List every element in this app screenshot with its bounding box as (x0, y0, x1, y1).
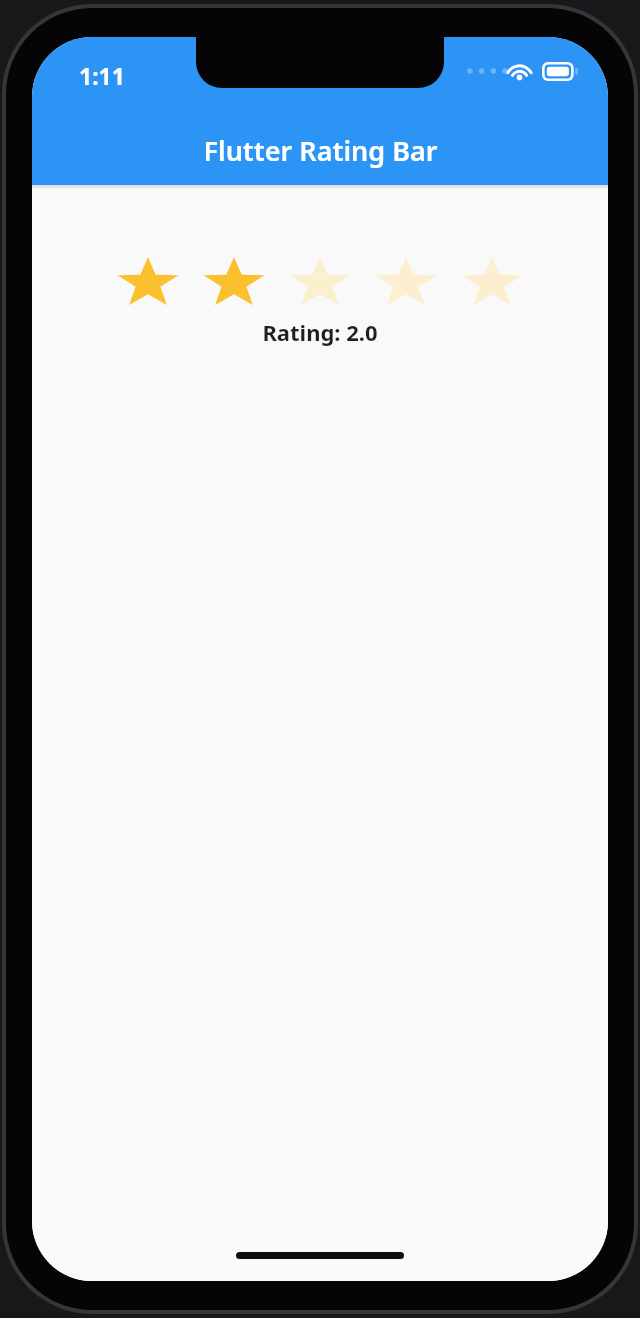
button[interactable]: Rate 3 of 5 stars (277, 255, 363, 311)
button[interactable]: Rate 1 of 5 stars (105, 255, 191, 311)
staticText: 1:11 (79, 60, 125, 91)
button[interactable]: Rate 5 of 5 stars (449, 255, 535, 311)
staticText: Rating: 2.0 (262, 317, 378, 347)
button[interactable]: Rate 4 of 5 stars (363, 255, 449, 311)
button[interactable]: Rate 2 of 5 stars (191, 255, 277, 311)
staticText: Flutter Rating Bar (203, 132, 438, 169)
